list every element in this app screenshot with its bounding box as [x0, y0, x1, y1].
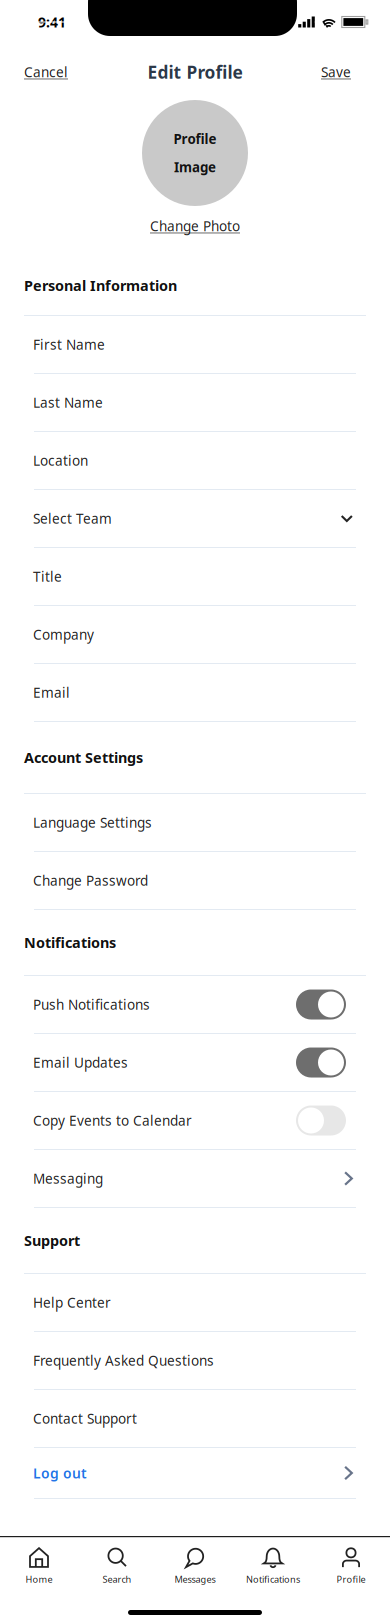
staticText: Push Notifications	[33, 995, 150, 1014]
button[interactable]: Profile	[312, 1537, 390, 1595]
button[interactable]: Log out	[0, 1448, 390, 1499]
staticText: Support	[24, 1231, 80, 1250]
staticText: Save	[321, 63, 351, 81]
staticText: Messaging	[33, 1169, 103, 1188]
staticText: Language Settings	[33, 813, 152, 832]
staticText: Log out	[33, 1464, 87, 1482]
button[interactable]: Messaging	[0, 1150, 390, 1208]
button[interactable]: Title	[0, 548, 390, 606]
button[interactable]: Last Name	[0, 374, 390, 432]
button[interactable]: Save	[321, 50, 351, 94]
button[interactable]: Select Team	[0, 490, 390, 548]
button[interactable]: Location	[0, 432, 390, 490]
staticText: Email Updates	[33, 1053, 128, 1072]
staticText: Messages	[174, 1573, 215, 1585]
staticText: Change Password	[33, 871, 148, 890]
staticText: Last Name	[33, 393, 103, 412]
staticText: Notifications	[24, 933, 116, 952]
staticText: Contact Support	[33, 1409, 137, 1428]
button[interactable]: Cancel	[24, 50, 68, 94]
button[interactable]: Search	[78, 1537, 156, 1595]
staticText: First Name	[33, 335, 105, 354]
staticText: Personal Information	[24, 276, 177, 295]
staticText: Image	[174, 158, 216, 176]
staticText: Company	[33, 625, 94, 644]
button[interactable]: Company	[0, 606, 390, 664]
staticText: Help Center	[33, 1293, 111, 1312]
staticText: Change Photo	[150, 217, 240, 235]
button[interactable]: Push Notifications	[0, 976, 390, 1034]
staticText: Home	[25, 1573, 52, 1585]
button[interactable]: Help Center	[0, 1274, 390, 1332]
button[interactable]: Email Updates	[0, 1034, 390, 1092]
staticText: 9:41	[38, 12, 66, 32]
staticText: Copy Events to Calendar	[33, 1111, 192, 1130]
button[interactable]: Email	[0, 664, 390, 722]
button[interactable]: Language Settings	[0, 794, 390, 852]
button[interactable]: Messages	[156, 1537, 234, 1595]
button[interactable]: Contact Support	[0, 1390, 390, 1448]
button[interactable]: Change Password	[0, 852, 390, 910]
staticText: Title	[33, 567, 62, 586]
staticText: Profile	[173, 130, 216, 148]
button[interactable]: Home	[0, 1537, 78, 1595]
button[interactable]: Notifications	[234, 1537, 312, 1595]
button[interactable]: Frequently Asked Questions	[0, 1332, 390, 1390]
staticText: Search	[102, 1573, 131, 1585]
staticText: Frequently Asked Questions	[33, 1351, 214, 1370]
button[interactable]: Change Photo	[150, 206, 240, 246]
staticText: Notifications	[246, 1573, 300, 1585]
button[interactable]: First Name	[0, 316, 390, 374]
staticText: Profile	[336, 1573, 365, 1585]
staticText: Cancel	[24, 63, 68, 81]
staticText: Email	[33, 683, 70, 702]
staticText: Location	[33, 451, 88, 470]
staticText: Account Settings	[24, 748, 143, 767]
button[interactable]: Copy Events to Calendar	[0, 1092, 390, 1150]
staticText: Select Team	[33, 509, 112, 528]
staticText: Edit Profile	[147, 60, 242, 84]
